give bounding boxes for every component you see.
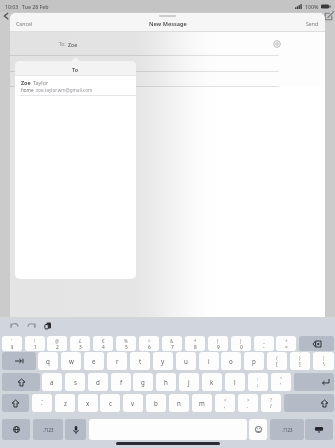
button[interactable]: v (123, 394, 143, 412)
staticText: ; (257, 382, 259, 389)
button[interactable]: % (116, 336, 136, 351)
button[interactable]: Shift (284, 394, 334, 412)
button[interactable]: s (65, 373, 85, 391)
button[interactable]: ! (25, 336, 45, 351)
button[interactable]: Paste (44, 321, 53, 330)
button[interactable]: o (221, 352, 241, 370)
staticText: x (86, 399, 90, 407)
button[interactable]: b (146, 394, 166, 412)
staticText: Zoe (68, 41, 78, 48)
button[interactable]: { (267, 352, 287, 370)
staticText: ] (299, 361, 301, 368)
button[interactable]: Send (304, 18, 321, 29)
staticText: w (69, 357, 74, 365)
staticText: Taylor (33, 79, 49, 86)
staticText: 6 (148, 344, 151, 350)
button[interactable]: t (130, 352, 150, 370)
staticText: r (116, 357, 119, 365)
button[interactable]: Compose (324, 11, 334, 21)
button[interactable]: Add contact (273, 40, 281, 48)
button[interactable]: j (179, 373, 199, 391)
button[interactable]: Back (2, 12, 10, 20)
button[interactable]: q (38, 352, 58, 370)
staticText: i (208, 357, 210, 365)
button[interactable]: ` (2, 336, 22, 351)
button[interactable]: w (61, 352, 81, 370)
button[interactable]: c (100, 394, 120, 412)
button[interactable]: @ (47, 336, 67, 351)
button[interactable]: Backspace (299, 336, 334, 351)
button[interactable]: ? (261, 394, 281, 412)
staticText: d (96, 378, 100, 386)
staticText: n (177, 399, 181, 407)
staticText: 100% (305, 3, 319, 10)
button[interactable]: .?123 (270, 419, 304, 440)
button[interactable]: € (93, 336, 113, 351)
button[interactable]: k (202, 373, 222, 391)
button[interactable]: Redo (27, 321, 36, 330)
button[interactable]: _ (254, 336, 274, 351)
button[interactable]: m (192, 394, 212, 412)
button[interactable]: Shift (2, 394, 29, 412)
staticText: ! (34, 338, 36, 344)
staticText: p (252, 357, 256, 365)
button[interactable]: .?123 (33, 419, 63, 440)
button[interactable]: u (176, 352, 196, 370)
button[interactable]: i (199, 352, 219, 370)
staticText: 8 (194, 344, 197, 350)
button[interactable]: Cancel (14, 18, 35, 29)
button[interactable]: Undo (10, 321, 19, 330)
button[interactable]: g (133, 373, 153, 391)
button[interactable]: & (162, 336, 182, 351)
button[interactable]: ( (208, 336, 228, 351)
staticText: .?123 (282, 427, 293, 433)
staticText: v (131, 399, 135, 407)
button[interactable]: : (248, 373, 268, 391)
staticText: z (64, 399, 67, 407)
button[interactable]: d (88, 373, 108, 391)
button[interactable]: Zoe (15, 76, 136, 96)
button[interactable]: Return (294, 373, 334, 391)
button[interactable]: ~ (32, 394, 52, 412)
button[interactable]: h (156, 373, 176, 391)
staticText: y (161, 357, 165, 365)
button[interactable]: Emoji (249, 419, 267, 440)
button[interactable]: } (290, 352, 310, 370)
button[interactable]: n (169, 394, 189, 412)
button[interactable]: e (84, 352, 104, 370)
button[interactable]: " (271, 373, 291, 391)
button[interactable]: * (185, 336, 205, 351)
button[interactable]: y (153, 352, 173, 370)
button[interactable]: £ (70, 336, 90, 351)
staticText: 1 (34, 344, 37, 350)
button[interactable]: Change keyboard (2, 419, 30, 440)
button[interactable]: ^ (139, 336, 159, 351)
button[interactable]: x (78, 394, 98, 412)
staticText: < (224, 397, 227, 403)
button[interactable]: p (244, 352, 264, 370)
button[interactable]: Tab (2, 352, 36, 370)
staticText: / (270, 403, 272, 410)
button[interactable]: | (313, 352, 334, 370)
staticText: b (154, 399, 158, 407)
button[interactable]: Dictate (65, 419, 86, 440)
staticText: l (234, 378, 236, 386)
button[interactable]: l (225, 373, 245, 391)
button[interactable]: + (276, 336, 296, 351)
staticText: ) (240, 338, 242, 344)
button[interactable]: z (55, 394, 75, 412)
staticText: 2 (56, 344, 59, 350)
button[interactable]: < (215, 394, 235, 412)
button[interactable]: a (42, 373, 62, 391)
staticText: Tue 28 Feb (22, 3, 49, 10)
button[interactable]: r (107, 352, 127, 370)
button[interactable]: Hide keyboard (305, 419, 333, 440)
button[interactable]: f (111, 373, 131, 391)
staticText: 7 (171, 344, 174, 350)
button[interactable]: Shift (2, 373, 40, 391)
button[interactable]: > (238, 394, 258, 412)
button[interactable]: ) (231, 336, 251, 351)
staticText: * (194, 338, 197, 344)
